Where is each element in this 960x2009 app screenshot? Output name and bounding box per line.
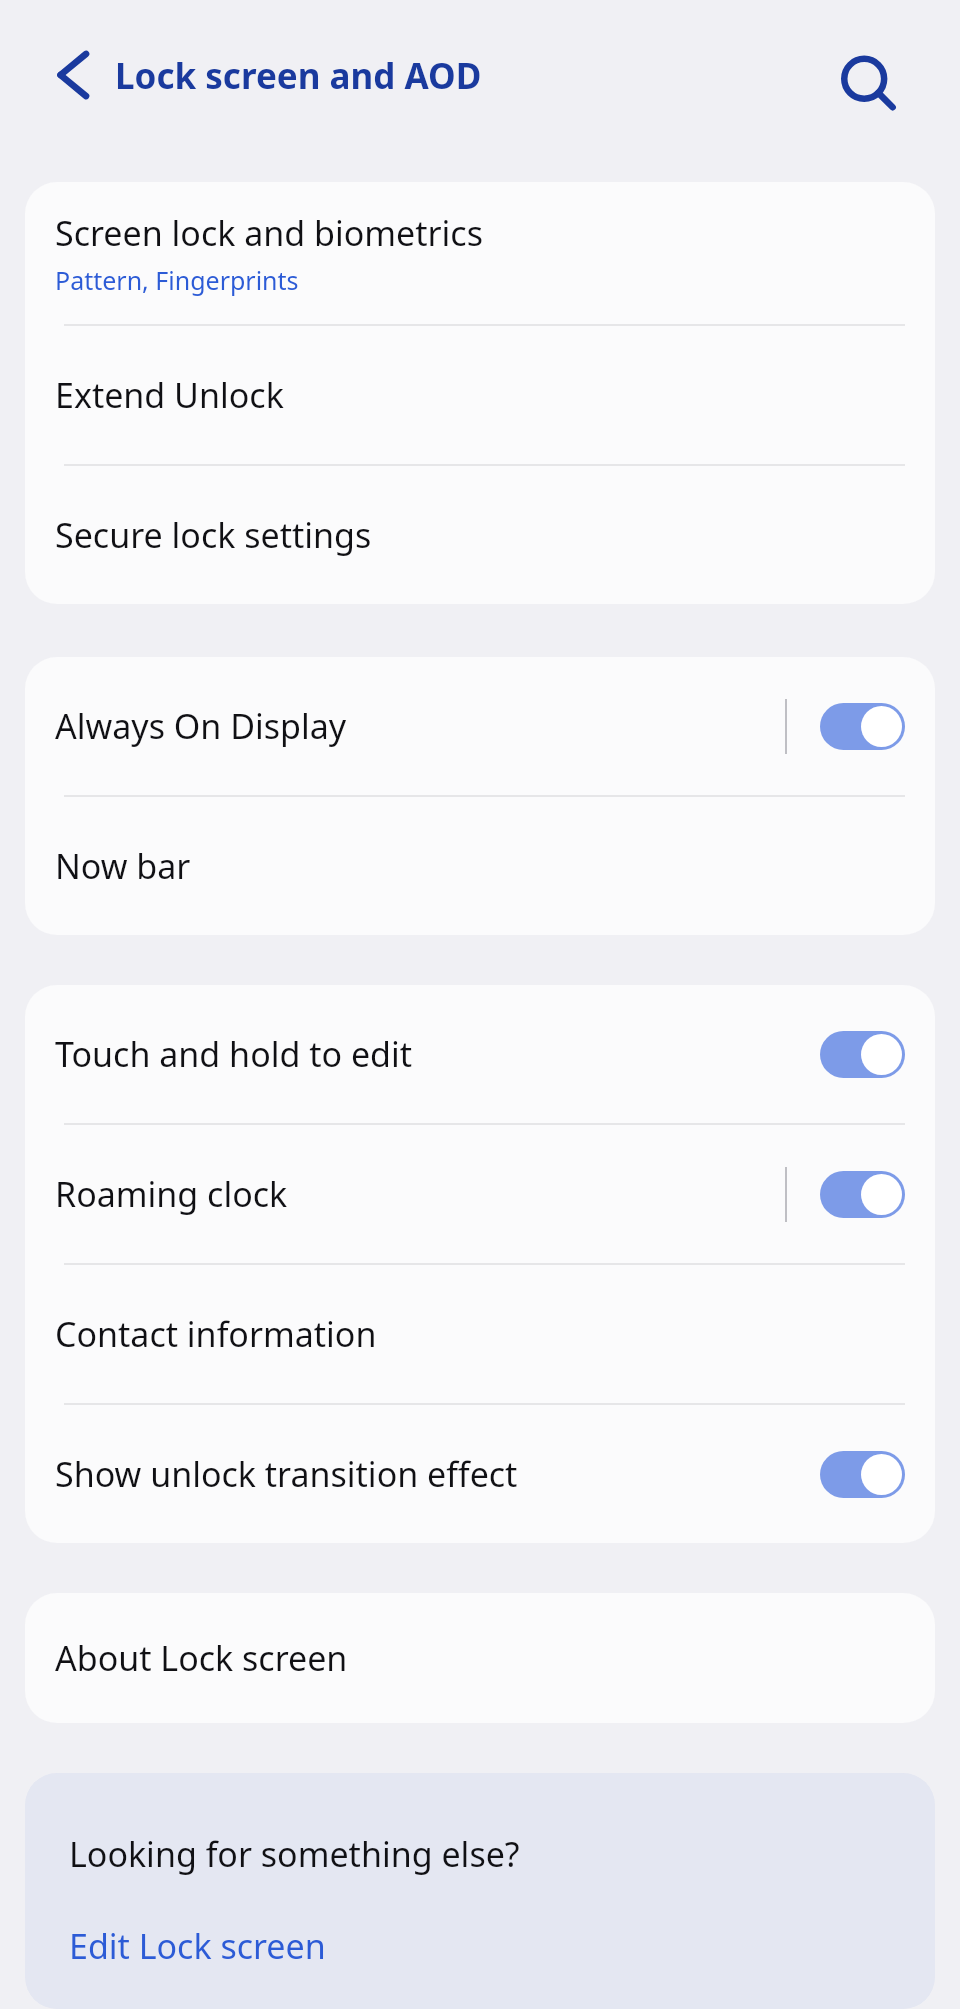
staticText: Looking for something else? [69,1831,520,1877]
staticText: About Lock screen [55,1635,348,1681]
button[interactable]: Now bar [25,797,935,935]
staticText: Edit Lock screen [69,1923,326,1969]
staticText: Lock screen and AOD [115,52,482,100]
button[interactable]: Contact information [25,1265,935,1403]
staticText: Secure lock settings [55,512,372,558]
button[interactable]: Extend Unlock [25,326,935,464]
staticText: Touch and hold to edit [55,1031,413,1077]
button[interactable]: Toggle [820,703,905,750]
button[interactable]: Edit Lock screen [69,1923,326,1969]
staticText: Extend Unlock [55,372,284,418]
button[interactable]: Toggle [820,1171,905,1218]
button[interactable]: Touch and hold to edit [25,985,935,1123]
staticText: Always On Display [55,703,347,749]
button[interactable]: About Lock screen [25,1593,935,1723]
staticText: Contact information [55,1311,377,1357]
staticText: Now bar [55,843,191,889]
button[interactable]: Roaming clock [25,1125,935,1263]
staticText: Roaming clock [55,1171,288,1217]
button[interactable]: Back [40,43,104,107]
button[interactable]: Toggle [820,1451,905,1498]
staticText: Screen lock and biometrics [55,210,483,256]
button[interactable]: Search [832,48,902,118]
staticText: Pattern, Fingerprints [55,263,299,297]
button[interactable]: Screen lock and biometrics [25,182,935,324]
button[interactable]: Show unlock transition effect [25,1405,935,1543]
staticText: Show unlock transition effect [55,1451,518,1497]
button[interactable]: Always On Display [25,657,935,795]
button[interactable]: Secure lock settings [25,466,935,604]
button[interactable]: Toggle [820,1031,905,1078]
